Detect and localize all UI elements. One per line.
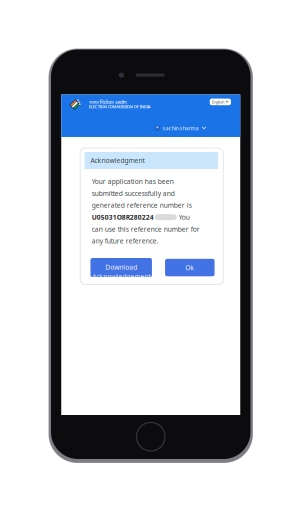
- staticText: ELECTION COMMISSION OF INDIA: [89, 104, 151, 109]
- button[interactable]: Download: [90, 258, 152, 277]
- staticText: Acknowledgement: [92, 272, 150, 281]
- staticText: U05031O8R280224: [92, 213, 154, 222]
- staticText: generated reference number is: [92, 201, 192, 210]
- staticText: You: [179, 213, 190, 222]
- staticText: submitted successfully and: [92, 189, 175, 198]
- staticText: Acknowledgment: [90, 156, 144, 165]
- staticText: Ok: [185, 263, 194, 272]
- button[interactable]: Ok: [165, 259, 215, 276]
- button[interactable]: sachin sharma: [155, 125, 206, 132]
- staticText: sachin sharma: [163, 125, 199, 132]
- staticText: Download: [105, 263, 137, 272]
- staticText: can use this reference number for: [92, 225, 200, 233]
- staticText: भारत निर्वाचन आयोग: [89, 99, 127, 106]
- staticText: Your application has been: [92, 177, 174, 186]
- staticText: any future reference.: [92, 236, 159, 245]
- button[interactable]: English: [210, 99, 231, 105]
- staticText: English: [212, 99, 224, 104]
